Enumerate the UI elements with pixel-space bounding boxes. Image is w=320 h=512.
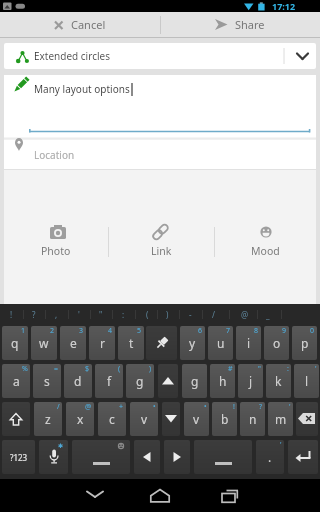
- staticText: h: [219, 373, 227, 389]
- button[interactable]: [140, 479, 180, 512]
- button[interactable]: a: [2, 364, 30, 398]
- staticText: _: [266, 309, 270, 320]
- button[interactable]: b: [212, 402, 237, 436]
- staticText: ": [99, 309, 103, 320]
- staticText: @: [85, 402, 92, 412]
- button[interactable]: [158, 364, 178, 398]
- staticText: @: [241, 309, 249, 320]
- staticText: +: [119, 402, 124, 412]
- staticText: •: [153, 402, 156, 412]
- button[interactable]: f: [95, 364, 123, 398]
- button[interactable]: Share: [160, 12, 320, 37]
- staticText: •: [204, 402, 207, 412]
- button[interactable]: v: [130, 402, 158, 436]
- button[interactable]: Link: [108, 210, 214, 274]
- staticText: o: [273, 335, 281, 351]
- staticText: 5: [137, 326, 142, 336]
- button[interactable]: l: [294, 364, 319, 398]
- staticText: k: [275, 373, 282, 389]
- staticText: a: [13, 373, 20, 389]
- staticText: Photo: [41, 244, 71, 258]
- staticText: 4: [108, 326, 113, 336]
- staticText: w: [39, 335, 49, 351]
- staticText: b: [221, 411, 229, 427]
- button[interactable]: [146, 326, 177, 360]
- button[interactable]: [194, 440, 252, 474]
- button[interactable]: Photo: [4, 210, 108, 274]
- button[interactable]: [134, 440, 160, 474]
- button[interactable]: Mood: [214, 210, 316, 274]
- staticText: $: [85, 364, 90, 374]
- staticText: y: [189, 335, 196, 351]
- button[interactable]: v: [184, 402, 209, 436]
- staticText: ✱: [58, 442, 64, 449]
- button[interactable]: c: [98, 402, 126, 436]
- staticText: ): [149, 364, 152, 374]
- button[interactable]: s: [33, 364, 61, 398]
- staticText: .: [268, 449, 272, 465]
- staticText: Cancel: [71, 17, 106, 32]
- button[interactable]: z: [34, 402, 62, 436]
- staticText: ): [166, 309, 169, 320]
- button[interactable]: [75, 479, 115, 512]
- button[interactable]: g: [126, 364, 154, 398]
- staticText: Link: [151, 244, 172, 258]
- button[interactable]: i: [236, 326, 261, 360]
- button[interactable]: [164, 440, 190, 474]
- button[interactable]: r: [89, 326, 115, 360]
- button[interactable]: t: [118, 326, 144, 360]
- staticText: ,: [55, 309, 58, 320]
- staticText: %: [22, 364, 28, 374]
- staticText: r: [100, 335, 105, 351]
- button[interactable]: ?123: [2, 440, 35, 474]
- staticText: Mood: [251, 244, 280, 258]
- button[interactable]: [288, 440, 318, 474]
- staticText: -: [189, 309, 192, 320]
- button[interactable]: Extended circles: [4, 43, 316, 69]
- staticText: u: [217, 335, 225, 351]
- staticText: 3: [79, 326, 84, 336]
- staticText: /: [57, 402, 60, 412]
- button[interactable]: [210, 479, 250, 512]
- staticText: e: [70, 335, 77, 351]
- button[interactable]: w: [31, 326, 57, 360]
- button[interactable]: Cancel: [0, 12, 160, 37]
- button[interactable]: [296, 402, 318, 436]
- staticText: 7: [226, 326, 231, 336]
- staticText: (: [146, 309, 149, 320]
- staticText: #: [228, 364, 233, 374]
- button[interactable]: [162, 402, 180, 436]
- button[interactable]: [72, 440, 130, 474]
- staticText: v: [193, 411, 200, 427]
- button[interactable]: e: [60, 326, 86, 360]
- staticText: q: [11, 335, 19, 351]
- staticText: 2: [50, 326, 55, 336]
- button[interactable]: y: [180, 326, 205, 360]
- button[interactable]: h: [210, 364, 235, 398]
- staticText: 8: [254, 326, 259, 336]
- staticText: s: [44, 373, 50, 389]
- staticText: f: [107, 373, 112, 389]
- button[interactable]: n: [240, 402, 265, 436]
- staticText: Share: [235, 17, 265, 32]
- button[interactable]: q: [2, 326, 28, 360]
- button[interactable]: x: [66, 402, 94, 436]
- button[interactable]: [39, 440, 68, 474]
- button[interactable]: g: [182, 364, 207, 398]
- button[interactable]: [2, 402, 30, 436]
- button[interactable]: u: [208, 326, 233, 360]
- staticText: ?123: [10, 452, 28, 463]
- staticText: ?: [259, 402, 263, 412]
- button[interactable]: p: [292, 326, 317, 360]
- button[interactable]: o: [264, 326, 289, 360]
- staticText: z: [45, 411, 51, 427]
- button[interactable]: j: [238, 364, 263, 398]
- button[interactable]: m: [268, 402, 293, 436]
- staticText: Location: [34, 148, 75, 162]
- staticText: !: [10, 309, 13, 320]
- staticText: t: [129, 335, 134, 351]
- button[interactable]: d: [64, 364, 92, 398]
- staticText: 1: [21, 326, 26, 336]
- button[interactable]: .: [256, 440, 284, 474]
- button[interactable]: k: [266, 364, 291, 398]
